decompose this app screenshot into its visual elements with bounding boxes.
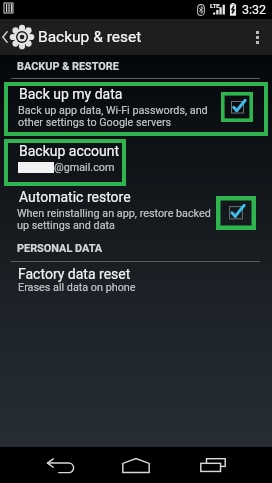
staticText: @gmail.com bbox=[54, 161, 115, 174]
staticText: Erases all data on phone bbox=[18, 281, 136, 294]
button[interactable]: Back bbox=[26, 449, 96, 483]
button[interactable]: Factory data reset bbox=[0, 264, 272, 300]
button[interactable]: Home bbox=[106, 447, 166, 483]
button[interactable]: Backup account bbox=[4, 139, 126, 186]
button[interactable]: More options bbox=[242, 19, 272, 55]
staticText: Factory data reset bbox=[18, 266, 131, 282]
button[interactable]: Recent apps bbox=[183, 447, 243, 483]
staticText: BACKUP & RESTORE bbox=[17, 60, 119, 73]
staticText: LTE bbox=[210, 2, 220, 9]
staticText: Back up my data bbox=[19, 86, 123, 102]
button[interactable]: Toggle checkbox bbox=[221, 92, 253, 122]
staticText: Backup account bbox=[19, 143, 120, 159]
button[interactable]: Toggle checkbox bbox=[216, 196, 256, 230]
staticText: Automatic restore bbox=[19, 189, 131, 205]
button[interactable]: Back up my data bbox=[4, 82, 268, 136]
staticText: When reinstalling an app, restore backed… bbox=[17, 207, 211, 232]
button[interactable]: Automatic restore bbox=[0, 187, 272, 235]
staticText: PERSONAL DATA bbox=[17, 242, 103, 255]
staticText: 3:32 bbox=[242, 2, 267, 17]
staticText: Back up app data, Wi-Fi passwords, and o… bbox=[18, 104, 208, 129]
button[interactable]: Navigate up bbox=[0, 19, 34, 55]
staticText: Backup & reset bbox=[38, 28, 142, 46]
